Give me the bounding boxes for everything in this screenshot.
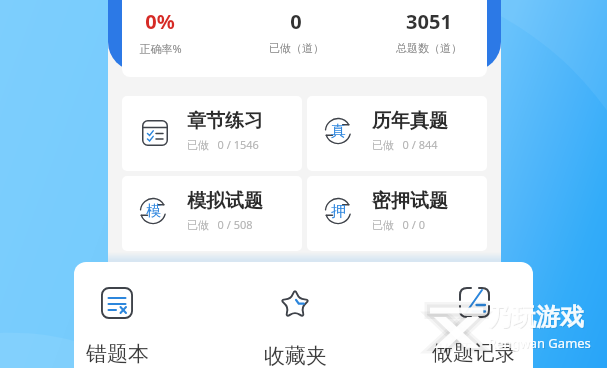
staticText: 错题本 xyxy=(86,341,149,367)
button[interactable]: 押 xyxy=(307,176,487,251)
staticText: 模拟试题 xyxy=(187,189,263,213)
staticText: 乃玩游戏 xyxy=(489,303,585,333)
staticText: 0 xyxy=(290,8,302,35)
button[interactable]: 真 xyxy=(307,96,487,171)
staticText: 已做 0 / 1546 xyxy=(187,137,259,152)
staticText: 正确率% xyxy=(139,41,182,56)
button[interactable]: 错题本 xyxy=(74,262,179,368)
staticText: 3051 xyxy=(406,8,452,35)
staticText: 做题记录 xyxy=(432,340,516,366)
staticText: 章节练习 xyxy=(187,109,263,133)
staticText: Rengwan Games xyxy=(488,334,591,352)
other: 错题本 xyxy=(101,287,133,319)
button[interactable]: 章节练习 xyxy=(122,96,302,171)
staticText: 0% xyxy=(145,8,175,35)
staticText: 已做 0 / 844 xyxy=(372,137,438,152)
staticText: 已做（道） xyxy=(269,41,324,55)
other: 收藏夹 xyxy=(278,287,312,321)
staticText: 乃玩游戏 xyxy=(488,302,584,332)
button[interactable]: 做题记录 xyxy=(412,262,533,368)
other: 做题记录 xyxy=(459,287,490,318)
staticText: 历年真题 xyxy=(372,109,448,133)
staticText: 模 xyxy=(146,202,161,221)
staticText: 密押试题 xyxy=(372,189,448,213)
staticText: 已做 0 / 0 xyxy=(372,217,425,232)
staticText: 总题数（道） xyxy=(396,41,462,55)
staticText: 收藏夹 xyxy=(264,343,327,368)
staticText: Rengwan Games xyxy=(489,335,592,353)
staticText: 真 xyxy=(331,122,346,141)
staticText: 押 xyxy=(331,202,346,221)
staticText: 已做 0 / 508 xyxy=(187,217,253,232)
button[interactable]: 收藏夹 xyxy=(233,262,357,368)
button[interactable]: 模 xyxy=(122,176,302,251)
